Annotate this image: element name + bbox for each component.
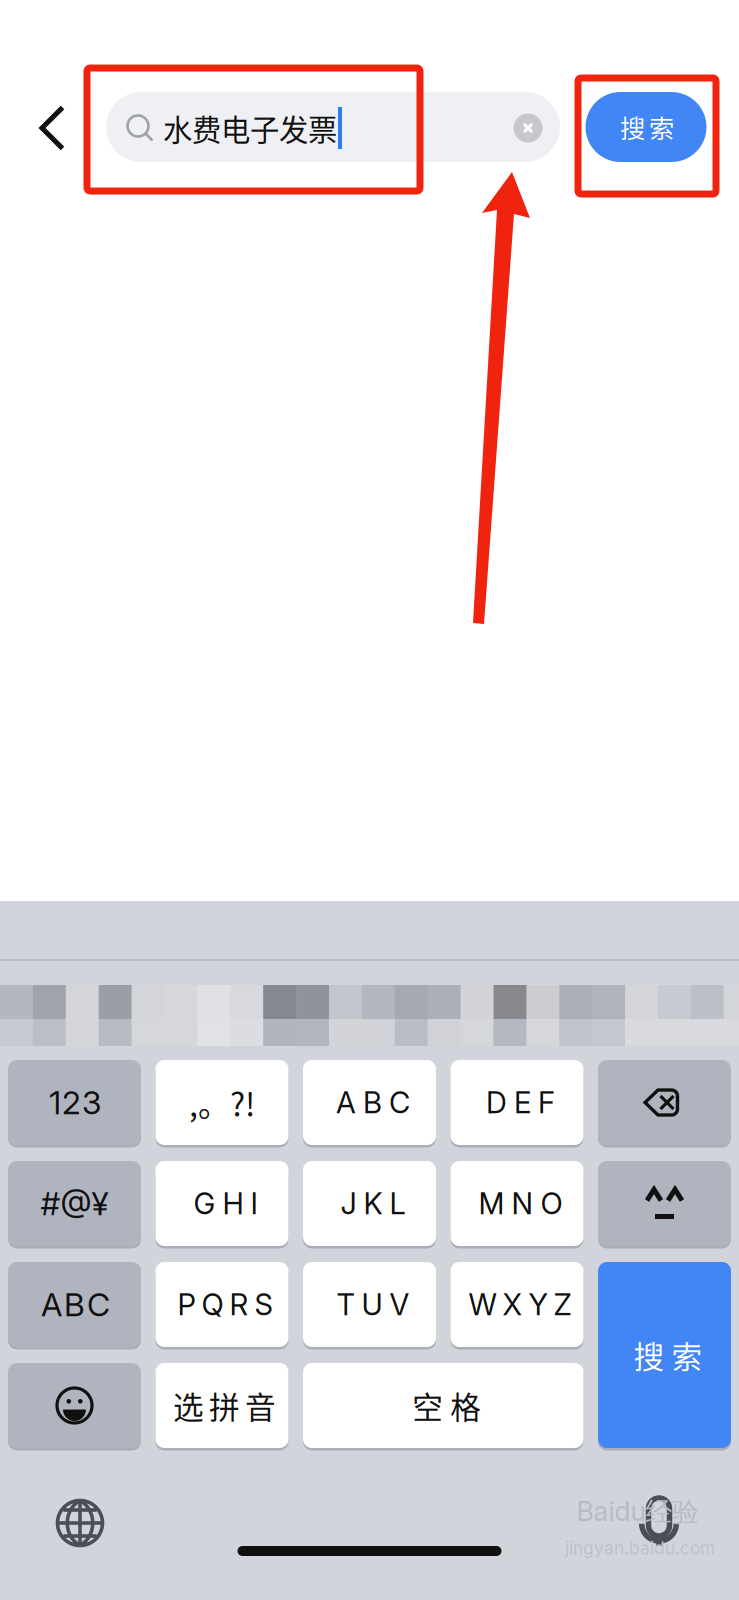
staticText: 空格 (412, 1383, 481, 1428)
button[interactable]: 空格 (303, 1361, 583, 1449)
button[interactable] (8, 1361, 141, 1449)
staticText: 搜索 (633, 1333, 702, 1377)
button[interactable]: #@¥ (8, 1159, 141, 1247)
button[interactable]: TUV (303, 1260, 436, 1348)
button[interactable] (598, 1058, 731, 1146)
staticText: MNO (478, 1186, 562, 1221)
staticText: GHI (193, 1186, 257, 1221)
button[interactable]: WXYZ (450, 1260, 583, 1348)
staticText: 选拼音 (173, 1383, 276, 1428)
staticText: 水费电子发票 (163, 107, 337, 149)
staticText: PQRS (177, 1287, 272, 1322)
staticText: jingyan.baidu.com (565, 1537, 715, 1558)
staticText: TUV (336, 1287, 409, 1322)
button[interactable]: Clear text (504, 104, 552, 152)
staticText: DEF (486, 1085, 555, 1120)
button[interactable]: GHI (155, 1159, 288, 1247)
button[interactable]: Dictation (624, 1482, 694, 1552)
staticText: #@¥ (40, 1184, 108, 1223)
staticText: ,。?! (189, 1079, 255, 1126)
button[interactable]: JKL (303, 1159, 436, 1247)
button[interactable]: DEF (450, 1058, 583, 1146)
button[interactable]: MNO (450, 1159, 583, 1247)
button[interactable]: ABC (8, 1260, 141, 1348)
button[interactable]: 选拼音 (155, 1361, 288, 1449)
button[interactable]: 搜索 (598, 1260, 731, 1449)
button[interactable]: PQRS (155, 1260, 288, 1348)
staticText: ABC (336, 1085, 410, 1120)
button[interactable]: Switch keyboard (45, 1488, 115, 1558)
button[interactable]: ,。?! (155, 1058, 288, 1146)
staticText: Baidu经验 (576, 1495, 699, 1529)
button[interactable] (598, 1159, 731, 1247)
button[interactable]: 搜索 (585, 92, 706, 162)
staticText: 搜索 (620, 109, 674, 145)
button[interactable]: 123 (8, 1058, 141, 1146)
staticText: ABC (41, 1285, 110, 1324)
staticText: WXYZ (468, 1287, 571, 1322)
button[interactable]: Back (21, 97, 83, 159)
staticText: 123 (49, 1083, 101, 1122)
button[interactable]: ABC (303, 1058, 436, 1146)
staticText: JKL (340, 1186, 405, 1221)
